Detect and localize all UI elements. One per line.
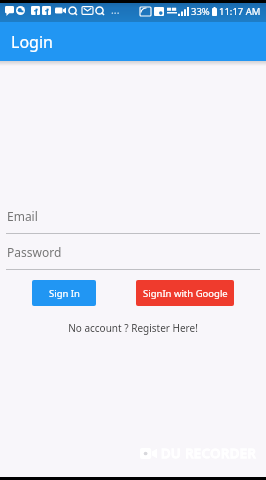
staticText: Password — [7, 244, 62, 260]
button[interactable]: SignIn with Google — [136, 280, 234, 306]
staticText: SignIn with Google — [143, 287, 228, 300]
staticText: Sign In — [49, 287, 80, 300]
staticText: 33% — [191, 5, 210, 18]
button[interactable]: Sign In — [32, 280, 96, 306]
button[interactable]: No account ? Register Here! — [68, 321, 198, 335]
staticText: Email — [7, 208, 38, 224]
staticText: 11:17 AM — [219, 5, 261, 18]
staticText: Login — [11, 31, 53, 53]
staticText: ... — [111, 3, 120, 17]
staticText: DU RECORDER — [161, 444, 257, 462]
